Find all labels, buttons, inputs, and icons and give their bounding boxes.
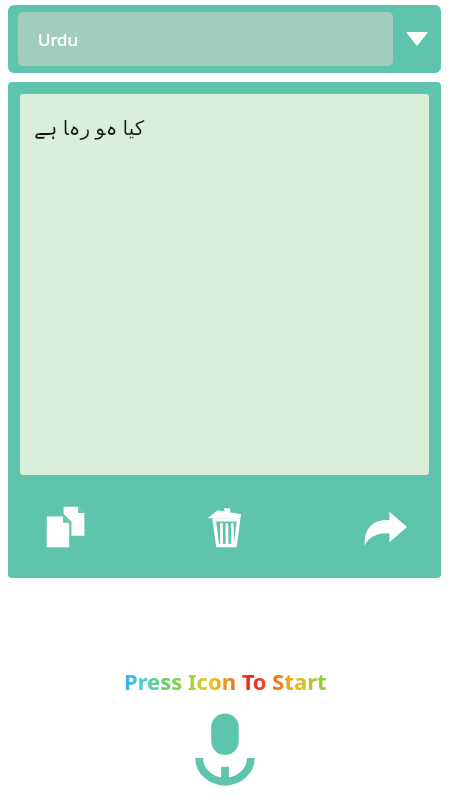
button[interactable]: Select language <box>393 5 441 73</box>
staticText: Urdu <box>38 28 79 51</box>
button[interactable]: Copy <box>38 499 94 555</box>
button[interactable]: Urdu <box>8 5 441 73</box>
staticText: Press Icon To Start <box>124 666 327 696</box>
button[interactable]: کیا ہو رہا ہے <box>20 94 429 475</box>
button[interactable]: Share <box>357 499 413 555</box>
staticText: کیا ہو رہا ہے <box>34 114 145 141</box>
button[interactable]: Start voice input <box>186 710 264 788</box>
button[interactable]: Delete <box>198 499 254 555</box>
